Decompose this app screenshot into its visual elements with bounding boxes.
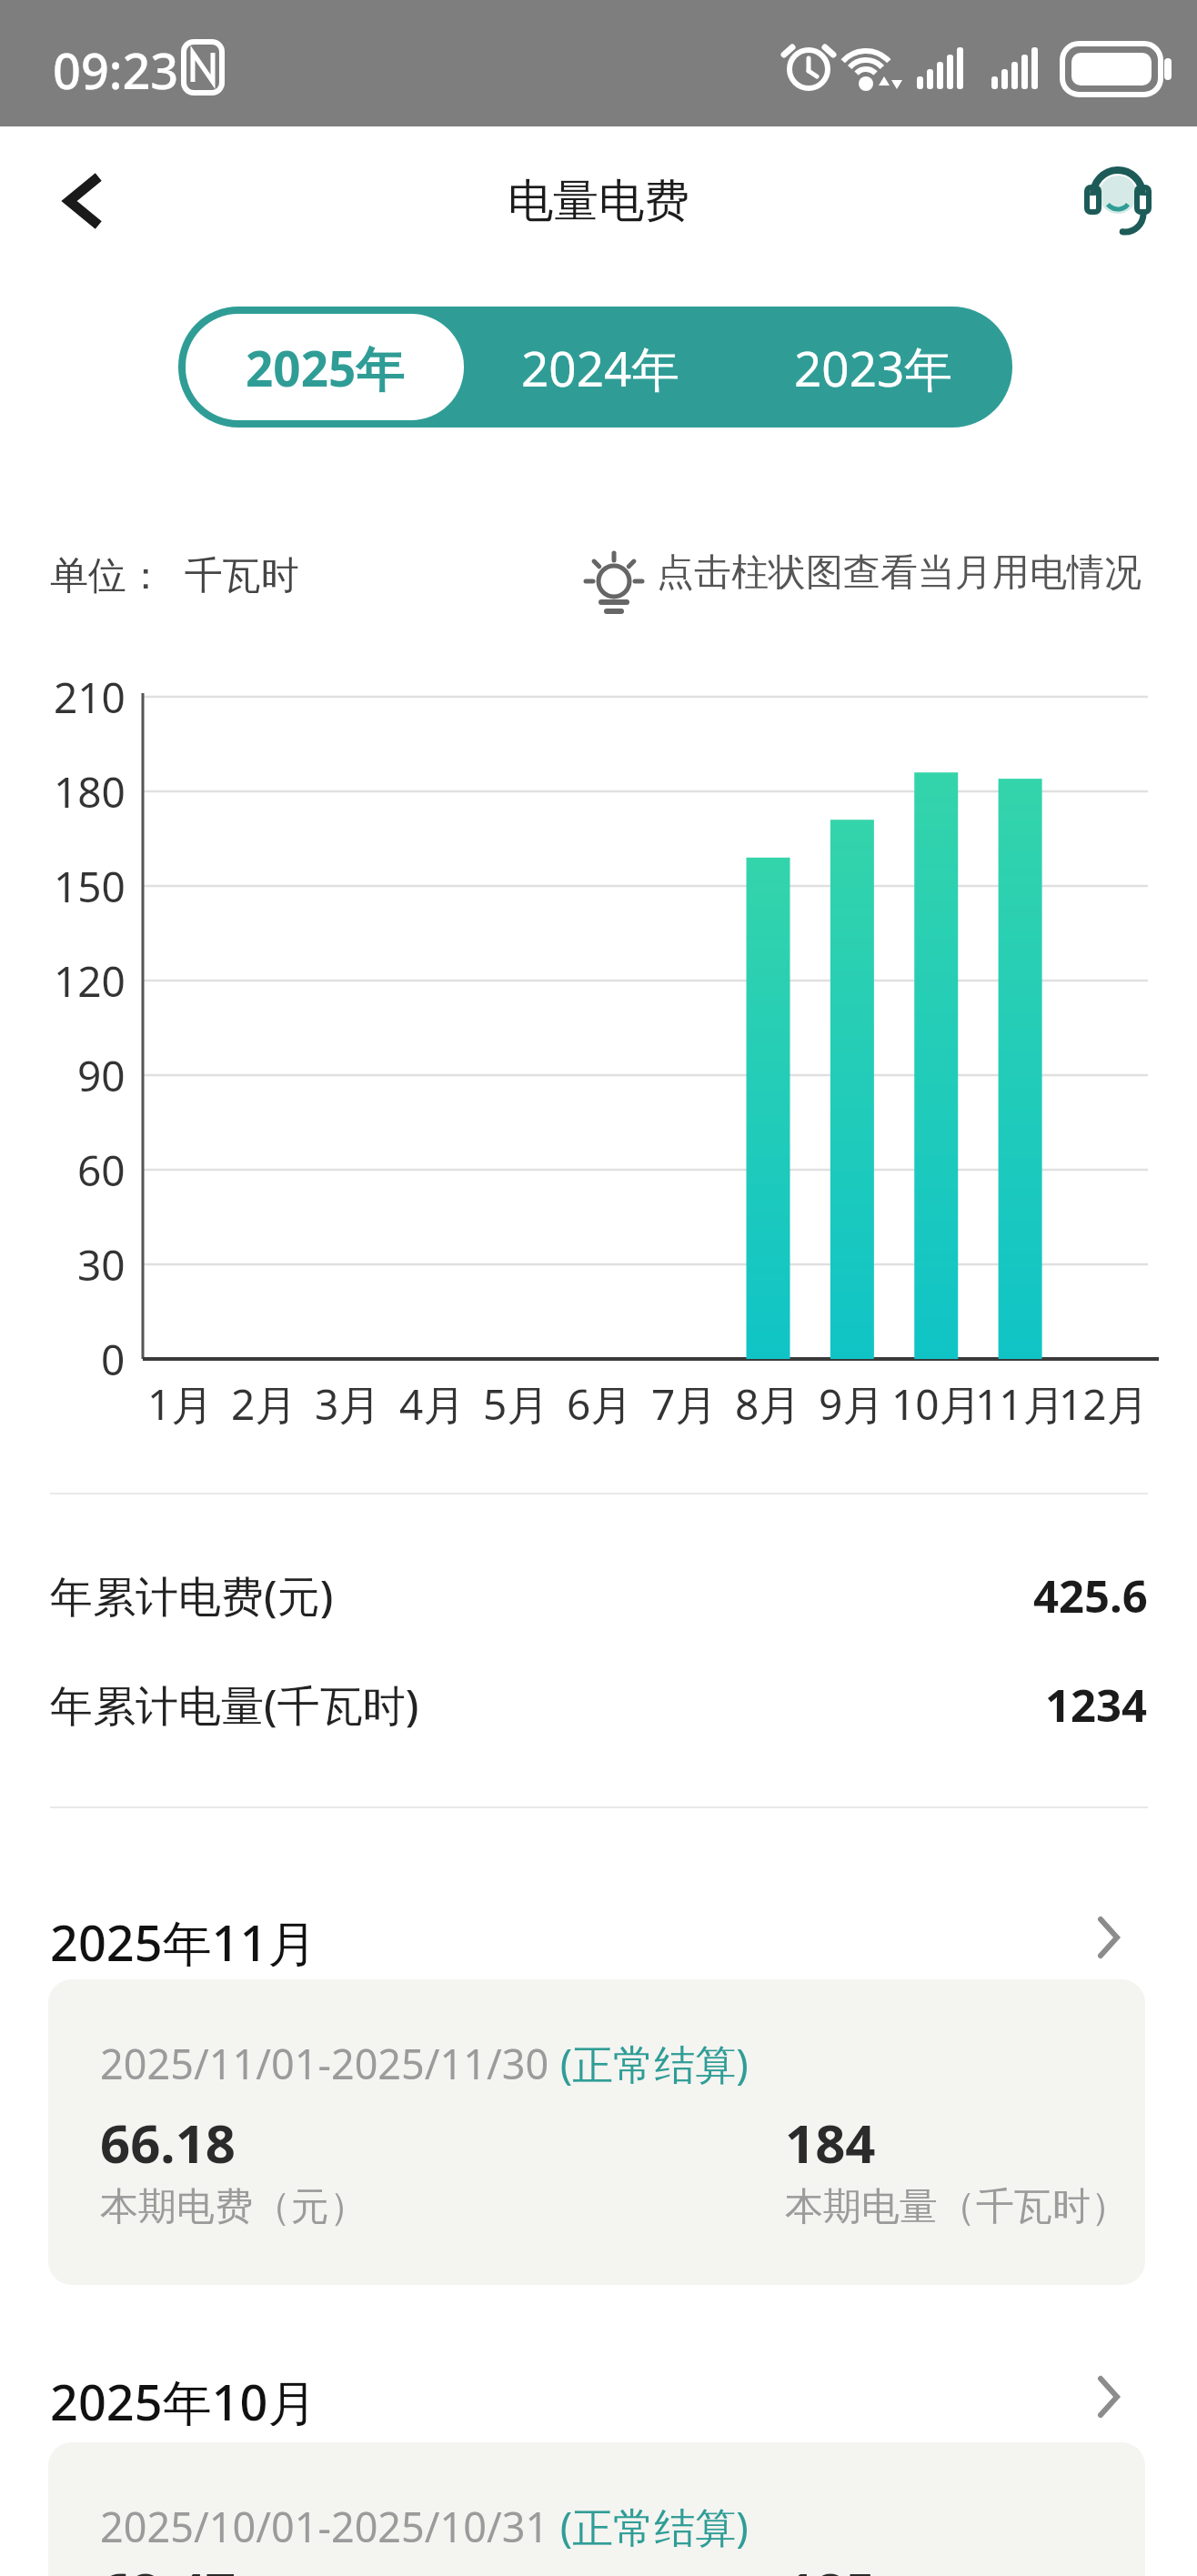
staticText: 30 bbox=[77, 1236, 126, 1293]
staticText: 5月 bbox=[483, 1375, 549, 1430]
button[interactable]: 2025年 bbox=[186, 314, 464, 420]
staticText: 本期电量（千瓦时） bbox=[785, 2183, 1129, 2231]
button[interactable]: 2025/11/01-2025/11/30 bbox=[48, 1979, 1145, 2285]
staticText: 90 bbox=[77, 1047, 126, 1104]
staticText: 66.18 bbox=[100, 2107, 236, 2170]
staticText: 7月 bbox=[651, 1375, 718, 1430]
staticText: 425.6 bbox=[1033, 1565, 1148, 1626]
staticText: 10月 bbox=[891, 1375, 981, 1430]
staticText: 180 bbox=[54, 763, 126, 820]
button[interactable]: 2025年11月 bbox=[0, 1908, 1197, 1967]
staticText: 12月 bbox=[1059, 1375, 1149, 1430]
staticText: 60 bbox=[77, 1142, 126, 1199]
staticText: (正常结算) bbox=[549, 2036, 749, 2091]
button[interactable] bbox=[47, 160, 120, 242]
button[interactable]: 2023年 bbox=[737, 307, 1010, 428]
staticText: 2月 bbox=[231, 1375, 297, 1430]
staticText: 2025年 bbox=[246, 335, 405, 400]
staticText: 11月 bbox=[975, 1375, 1065, 1430]
staticText: 185 bbox=[785, 2555, 876, 2576]
button[interactable]: 2024年 bbox=[464, 307, 737, 428]
staticText: 2024年 bbox=[521, 335, 680, 400]
button[interactable] bbox=[1079, 151, 1161, 242]
staticText: 点击柱状图查看当月用电情况 bbox=[657, 549, 1142, 597]
staticText: 1月 bbox=[147, 1375, 214, 1430]
staticText: 1234 bbox=[1045, 1675, 1148, 1736]
staticText: 年累计电量(千瓦时) bbox=[50, 1675, 419, 1734]
staticText: 210 bbox=[54, 669, 126, 726]
staticText: 3月 bbox=[315, 1375, 381, 1430]
staticText: 2025年10月 bbox=[50, 2368, 317, 2426]
button[interactable]: 2025/10/01-2025/10/31 bbox=[48, 2442, 1145, 2576]
staticText: 0 bbox=[101, 1331, 126, 1388]
staticText: 2023年 bbox=[794, 335, 953, 400]
staticText: 2025年11月 bbox=[50, 1908, 317, 1967]
staticText: 2025/11/01-2025/11/30 bbox=[100, 2036, 549, 2091]
staticText: 年累计电费(元) bbox=[50, 1566, 334, 1625]
staticText: 4月 bbox=[399, 1375, 466, 1430]
staticText: 184 bbox=[785, 2107, 876, 2170]
button[interactable]: 2025年10月 bbox=[0, 2368, 1197, 2426]
staticText: 单位： 千瓦时 bbox=[50, 548, 299, 599]
staticText: 8月 bbox=[735, 1375, 801, 1430]
staticText: 68.47 bbox=[100, 2555, 236, 2576]
staticText: 电量电费 bbox=[508, 173, 689, 230]
staticText: 09:23 bbox=[53, 36, 179, 96]
staticText: 9月 bbox=[819, 1375, 885, 1430]
staticText: 2025/10/01-2025/10/31 bbox=[100, 2499, 549, 2554]
staticText: 本期电费（元） bbox=[100, 2183, 367, 2231]
staticText: 150 bbox=[54, 858, 126, 915]
staticText: 120 bbox=[54, 952, 126, 1010]
staticText: (正常结算) bbox=[549, 2499, 749, 2554]
staticText: 6月 bbox=[567, 1375, 633, 1430]
